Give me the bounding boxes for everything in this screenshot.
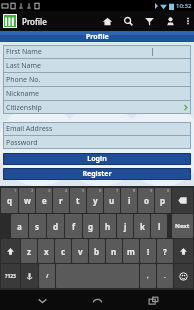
button[interactable]: First Name: [3, 45, 191, 58]
button[interactable]: 4: [53, 188, 69, 213]
button[interactable]: m: [123, 239, 139, 263]
staticText: Profile: [86, 32, 109, 42]
button[interactable]: Voice input: [21, 264, 38, 288]
button[interactable]: f: [65, 214, 82, 238]
button[interactable]: b: [89, 239, 105, 263]
button[interactable]: Recent apps: [139, 290, 167, 310]
staticText: Citizenship: [6, 103, 42, 113]
button[interactable]: /: [39, 264, 55, 288]
button[interactable]: n: [106, 239, 122, 263]
button[interactable]: Search: [118, 11, 139, 31]
button[interactable]: Citizenship: [3, 101, 191, 114]
staticText: p: [160, 195, 166, 206]
button[interactable]: z: [21, 239, 37, 263]
button[interactable]: App icon: [3, 14, 17, 28]
button[interactable]: 2: [19, 188, 35, 213]
staticText: 0: [167, 188, 170, 193]
staticText: 5: [82, 188, 85, 193]
button[interactable]: [172, 188, 193, 213]
staticText: ,: [147, 272, 149, 280]
staticText: e: [42, 195, 47, 206]
staticText: 10:32: [176, 2, 192, 10]
staticText: b: [94, 246, 100, 257]
staticText: j: [124, 221, 127, 232]
button[interactable]: ?: [157, 239, 173, 263]
button[interactable]: More options: [181, 11, 194, 31]
button[interactable]: Email Address: [3, 122, 191, 135]
button[interactable]: Account: [160, 11, 181, 31]
button[interactable]: j: [117, 214, 133, 238]
button[interactable]: a: [11, 214, 28, 238]
button[interactable]: Phone No.: [3, 73, 191, 86]
staticText: x: [44, 246, 49, 257]
staticText: Password: [6, 138, 38, 148]
staticText: ?123: [5, 273, 16, 280]
staticText: u: [109, 195, 115, 206]
staticText: 6: [99, 188, 102, 193]
staticText: 4: [65, 188, 68, 193]
staticText: Phone No.: [6, 75, 41, 85]
button[interactable]: d: [47, 214, 64, 238]
button[interactable]: 0: [155, 188, 171, 213]
button[interactable]: 8: [121, 188, 137, 213]
button[interactable]: v: [72, 239, 88, 263]
button[interactable]: Password: [3, 136, 191, 149]
button[interactable]: 1: [1, 188, 18, 213]
staticText: v: [78, 246, 83, 257]
staticText: Login: [87, 154, 107, 164]
staticText: w: [24, 195, 31, 206]
button[interactable]: Last Name: [3, 59, 191, 72]
button[interactable]: Home: [83, 290, 111, 310]
button[interactable]: x: [38, 239, 54, 263]
staticText: q: [7, 195, 13, 206]
button[interactable]: Filter: [139, 11, 160, 31]
staticText: .: [164, 272, 166, 280]
button[interactable]: Next: [172, 214, 193, 238]
button[interactable]: Shift: [174, 239, 193, 263]
button[interactable]: h: [100, 214, 116, 238]
button[interactable]: ,: [140, 264, 156, 288]
staticText: z: [27, 246, 31, 257]
staticText: k: [140, 221, 145, 232]
button[interactable]: Register: [3, 168, 191, 180]
button[interactable]: Nickname: [3, 87, 191, 100]
button[interactable]: ?123: [1, 264, 20, 288]
staticText: 7: [116, 188, 119, 193]
staticText: d: [53, 221, 59, 232]
staticText: Last Name: [6, 61, 42, 71]
staticText: Next: [175, 222, 190, 230]
staticText: l: [158, 221, 161, 232]
staticText: r: [59, 195, 63, 206]
staticText: a: [17, 221, 22, 232]
button[interactable]: 6: [87, 188, 103, 213]
button[interactable]: Login: [3, 153, 191, 165]
staticText: Register: [82, 169, 112, 179]
button[interactable]: 3: [36, 188, 52, 213]
staticText: 2: [31, 188, 34, 193]
button[interactable]: Shift: [1, 239, 20, 263]
staticText: Email Address: [6, 124, 53, 134]
button[interactable]: !: [140, 239, 156, 263]
staticText: o: [144, 195, 149, 206]
button[interactable]: l: [151, 214, 167, 238]
button[interactable]: Back: [28, 290, 56, 310]
button[interactable]: c: [55, 239, 71, 263]
staticText: Nickname: [6, 89, 39, 99]
button[interactable]: g: [83, 214, 99, 238]
staticText: 1: [14, 188, 17, 193]
button[interactable]: k: [134, 214, 150, 238]
staticText: /: [46, 272, 49, 280]
staticText: First Name: [6, 47, 42, 57]
button[interactable]: 7: [104, 188, 120, 213]
button[interactable]: s: [29, 214, 46, 238]
staticText: g: [88, 221, 94, 232]
button[interactable]: Emoji: [174, 264, 193, 288]
button[interactable]: 5: [70, 188, 86, 213]
button[interactable]: 9: [138, 188, 154, 213]
staticText: ?: [163, 246, 167, 257]
staticText: y: [93, 195, 98, 206]
button[interactable]: .: [157, 264, 173, 288]
staticText: i: [128, 195, 131, 206]
button[interactable]: Home: [97, 11, 118, 31]
